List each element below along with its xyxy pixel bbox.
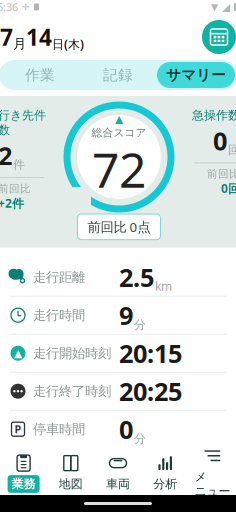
button[interactable]: 前回比 0点 (77, 214, 160, 240)
staticText: 0 (213, 124, 227, 157)
staticText: 0 (119, 412, 133, 446)
staticText: 日(木) (52, 36, 84, 52)
staticText: 停車時間 (33, 421, 85, 437)
button[interactable]: 記録 (79, 62, 157, 88)
staticText: 2.5 (119, 260, 154, 294)
staticText: 車両 (106, 477, 130, 491)
staticText: 走行距離 (33, 269, 85, 285)
staticText: ▲ (115, 113, 123, 125)
button[interactable]: メニュー (189, 452, 236, 494)
staticText: 作業 (25, 66, 55, 84)
button[interactable]: 分析 (142, 452, 189, 494)
staticText: 9 (119, 298, 133, 332)
staticText: 20:15 (119, 336, 182, 370)
staticText: ▼ (211, 2, 218, 12)
staticText: 分 (134, 431, 146, 446)
staticText: 走行時間 (33, 307, 85, 323)
button[interactable]: 車両 (94, 452, 142, 494)
button[interactable]: 地図 (47, 452, 94, 494)
staticText: 走行終了時刻 (33, 383, 111, 399)
staticText: +2件 (0, 195, 24, 211)
staticText: 行き先件数 (0, 108, 46, 137)
staticText: ◢ (222, 1, 230, 13)
staticText: 件 (13, 157, 25, 172)
staticText: 分 (134, 317, 146, 332)
staticText: P (14, 422, 21, 436)
staticText: 記録 (103, 66, 133, 84)
staticText: 6:36 (0, 0, 18, 14)
staticText: 業務 (12, 477, 36, 491)
staticText: 前回比 (0, 182, 31, 195)
staticText: 地図 (59, 477, 83, 491)
button[interactable]: 作業 (1, 62, 79, 88)
staticText: ▲ (14, 347, 22, 359)
staticText: 2 (0, 138, 12, 172)
staticText: 0回 (221, 180, 236, 196)
staticText: 月 (13, 36, 26, 52)
staticText: 回 (228, 143, 236, 157)
button[interactable]: 業務 (0, 452, 47, 494)
staticText: 前回比 0点 (87, 218, 150, 236)
staticText: 走行開始時刻 (33, 345, 111, 361)
button[interactable]: カレンダー (202, 20, 236, 54)
staticText: km (155, 278, 172, 294)
staticText: 急操作数 (192, 108, 236, 123)
staticText: 総合スコア (91, 126, 146, 139)
staticText: 20:25 (119, 374, 182, 408)
staticText: ✛ (22, 2, 30, 12)
staticText: 7 (0, 22, 13, 52)
staticText: サマリー (166, 66, 226, 84)
staticText: 14 (26, 22, 52, 52)
staticText: 分析 (153, 477, 177, 491)
button[interactable]: サマリー (157, 62, 235, 88)
staticText: 前回比 (207, 167, 236, 180)
staticText: 72 (92, 137, 146, 201)
staticText: メニュー (194, 469, 230, 499)
